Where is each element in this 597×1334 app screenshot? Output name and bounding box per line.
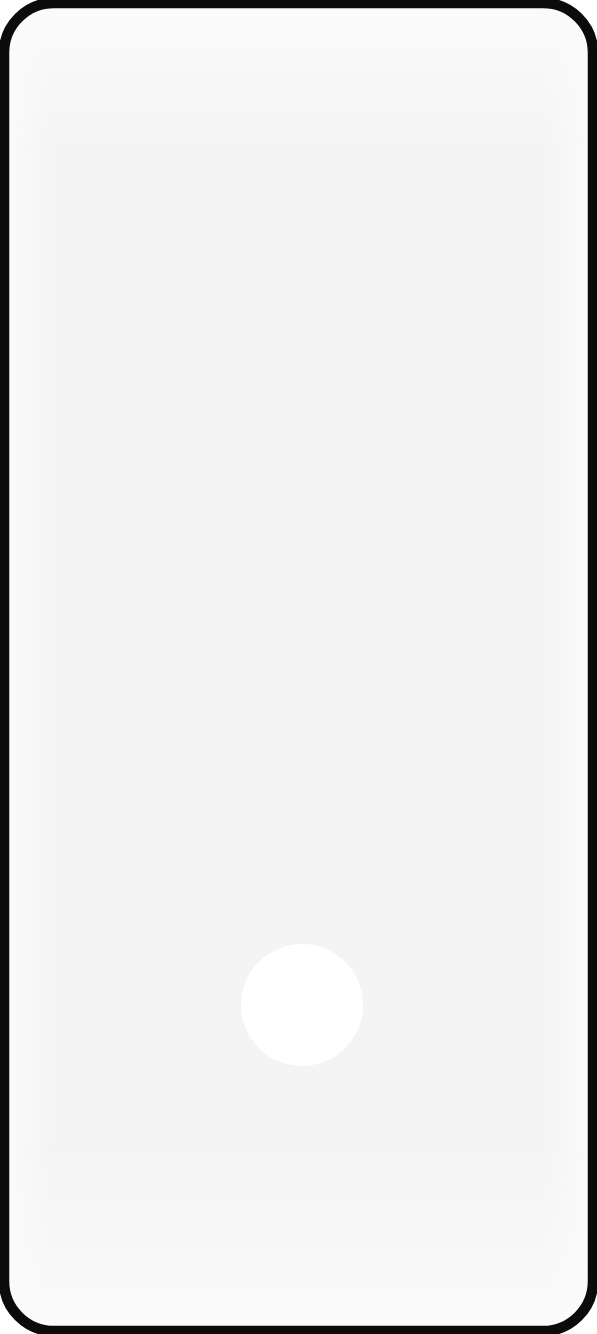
button[interactable]: Device preview <box>0 0 597 1334</box>
